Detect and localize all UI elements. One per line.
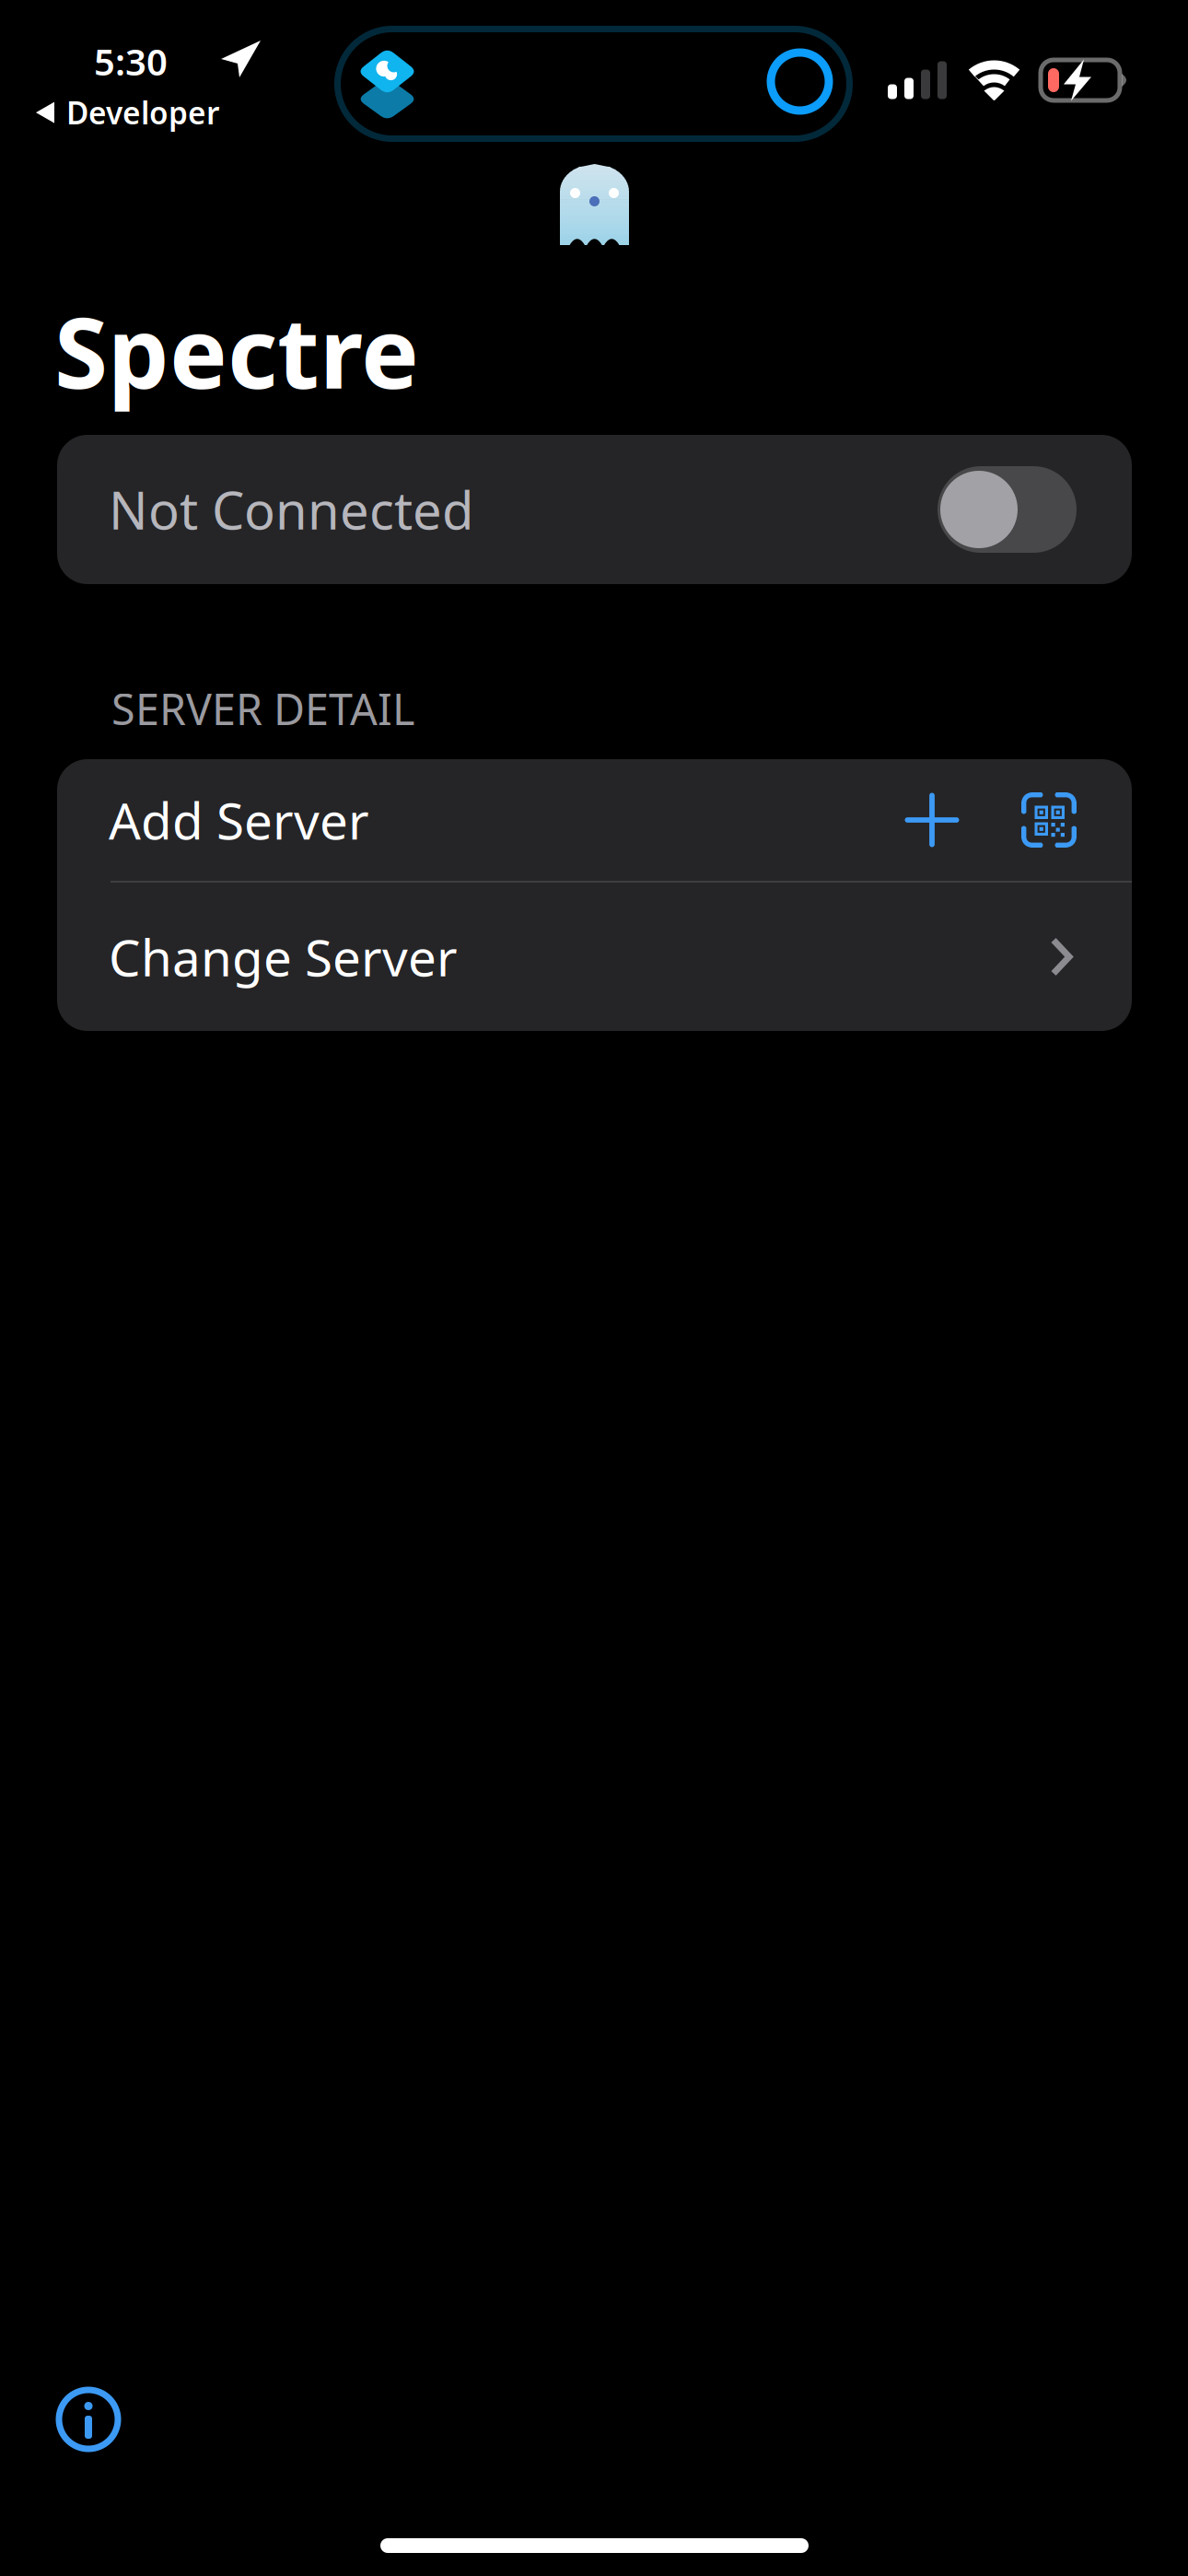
- staticText: Not Connected: [109, 475, 473, 544]
- button[interactable]: Info: [59, 2390, 118, 2449]
- button[interactable]: Connection: [938, 466, 1077, 553]
- staticText: SERVER DETAIL: [111, 680, 414, 737]
- button[interactable]: Add server: [892, 775, 972, 865]
- button[interactable]: Scan QR code: [1010, 774, 1088, 866]
- staticText: Add Server: [109, 787, 369, 853]
- button[interactable]: Change Server: [57, 883, 1132, 1031]
- staticText: Developer: [66, 92, 219, 133]
- staticText: Change Server: [109, 923, 458, 990]
- button[interactable]: Back to Developer: [36, 92, 219, 133]
- staticText: 5:30: [94, 37, 168, 86]
- staticText: Spectre: [54, 287, 419, 415]
